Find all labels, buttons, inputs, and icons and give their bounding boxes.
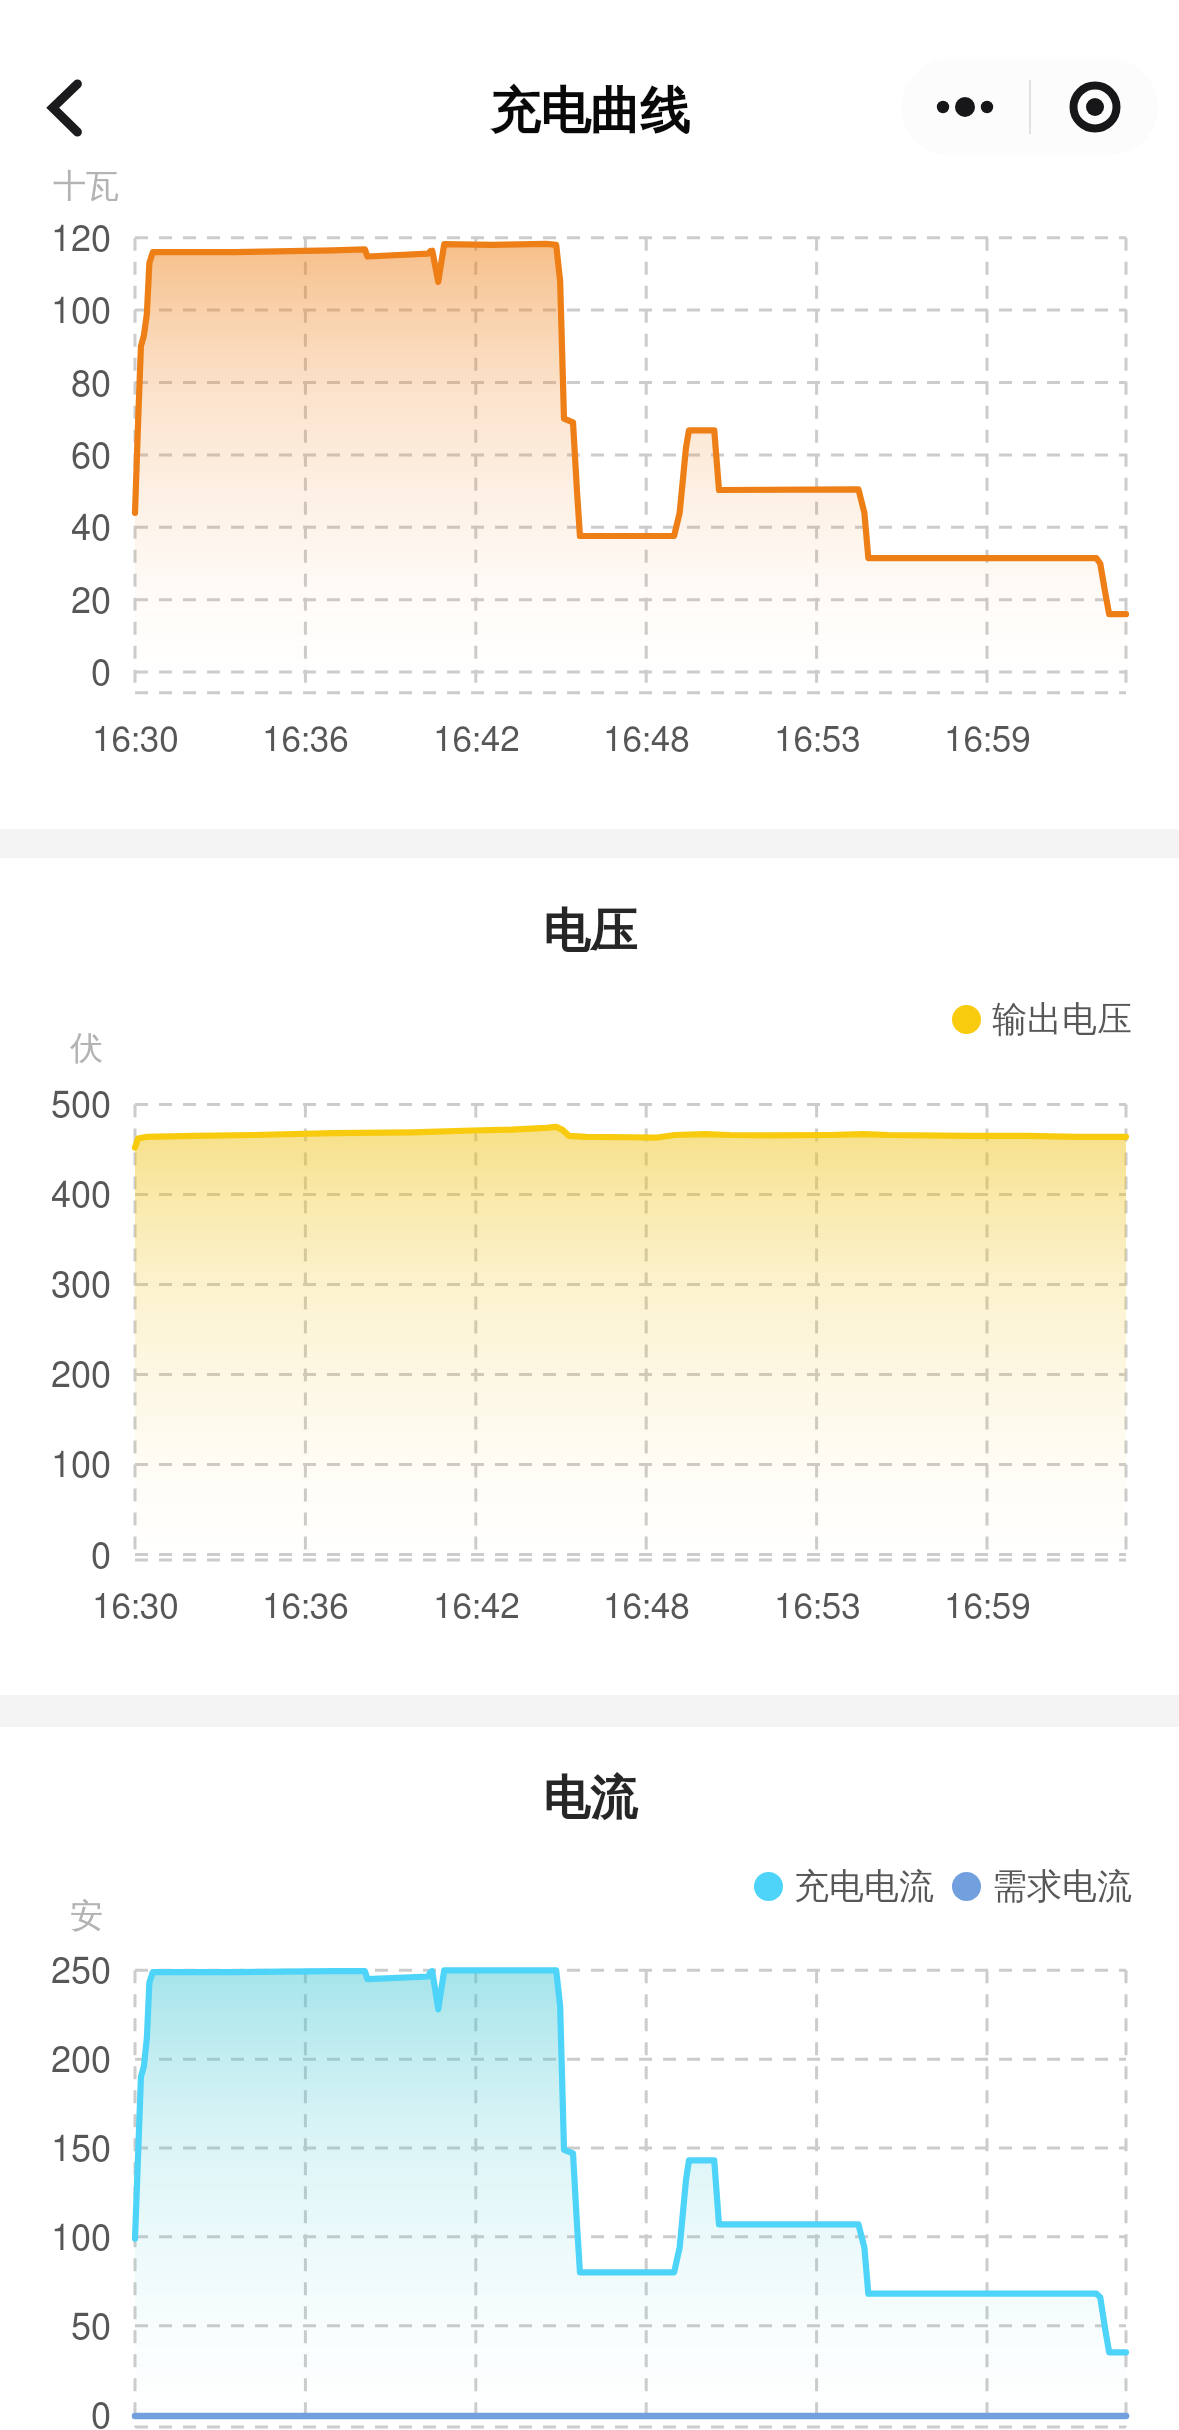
staticText: 400 <box>51 1178 112 1214</box>
staticText: 16:36 <box>262 1590 349 1625</box>
staticText: 250 <box>51 1954 112 1990</box>
staticText: 16:48 <box>603 723 690 758</box>
staticText: 输出电压 <box>992 997 1132 1041</box>
staticText: 200 <box>51 1358 112 1394</box>
staticText: 60 <box>71 439 112 475</box>
button[interactable]: Close mini program <box>1031 59 1158 155</box>
staticText: 需求电流 <box>992 1864 1132 1908</box>
staticText: 200 <box>51 2043 112 2079</box>
staticText: 80 <box>71 367 112 403</box>
staticText: 16:42 <box>433 1590 520 1625</box>
staticText: 16:42 <box>433 723 520 758</box>
staticText: 安 <box>70 1895 103 1937</box>
staticText: 40 <box>71 511 112 547</box>
staticText: 120 <box>51 222 112 258</box>
staticText: 16:36 <box>262 723 349 758</box>
staticText: 十瓦 <box>53 165 119 207</box>
staticText: 16:30 <box>92 723 179 758</box>
button[interactable]: More options <box>901 59 1029 155</box>
staticText: 100 <box>51 1448 112 1484</box>
staticText: 充电曲线 <box>490 80 690 143</box>
staticText: 16:30 <box>92 1590 179 1625</box>
staticText: 充电电流 <box>794 1864 934 1908</box>
staticText: 20 <box>71 584 112 620</box>
staticText: 电流 <box>543 1769 637 1828</box>
staticText: 16:48 <box>603 1590 690 1625</box>
staticText: 50 <box>71 2310 112 2346</box>
staticText: 电压 <box>543 902 637 961</box>
staticText: 100 <box>51 2221 112 2257</box>
staticText: 150 <box>51 2132 112 2168</box>
staticText: 16:59 <box>944 723 1031 758</box>
staticText: 伏 <box>70 1027 103 1069</box>
staticText: 500 <box>51 1088 112 1124</box>
staticText: 0 <box>91 656 112 692</box>
staticText: 0 <box>91 1539 112 1575</box>
staticText: 16:59 <box>944 1590 1031 1625</box>
staticText: 16:53 <box>774 1590 861 1625</box>
staticText: 0 <box>91 2399 112 2430</box>
staticText: 300 <box>51 1268 112 1304</box>
staticText: 16:53 <box>774 723 861 758</box>
staticText: 100 <box>51 294 112 330</box>
button[interactable]: Back <box>20 60 116 156</box>
